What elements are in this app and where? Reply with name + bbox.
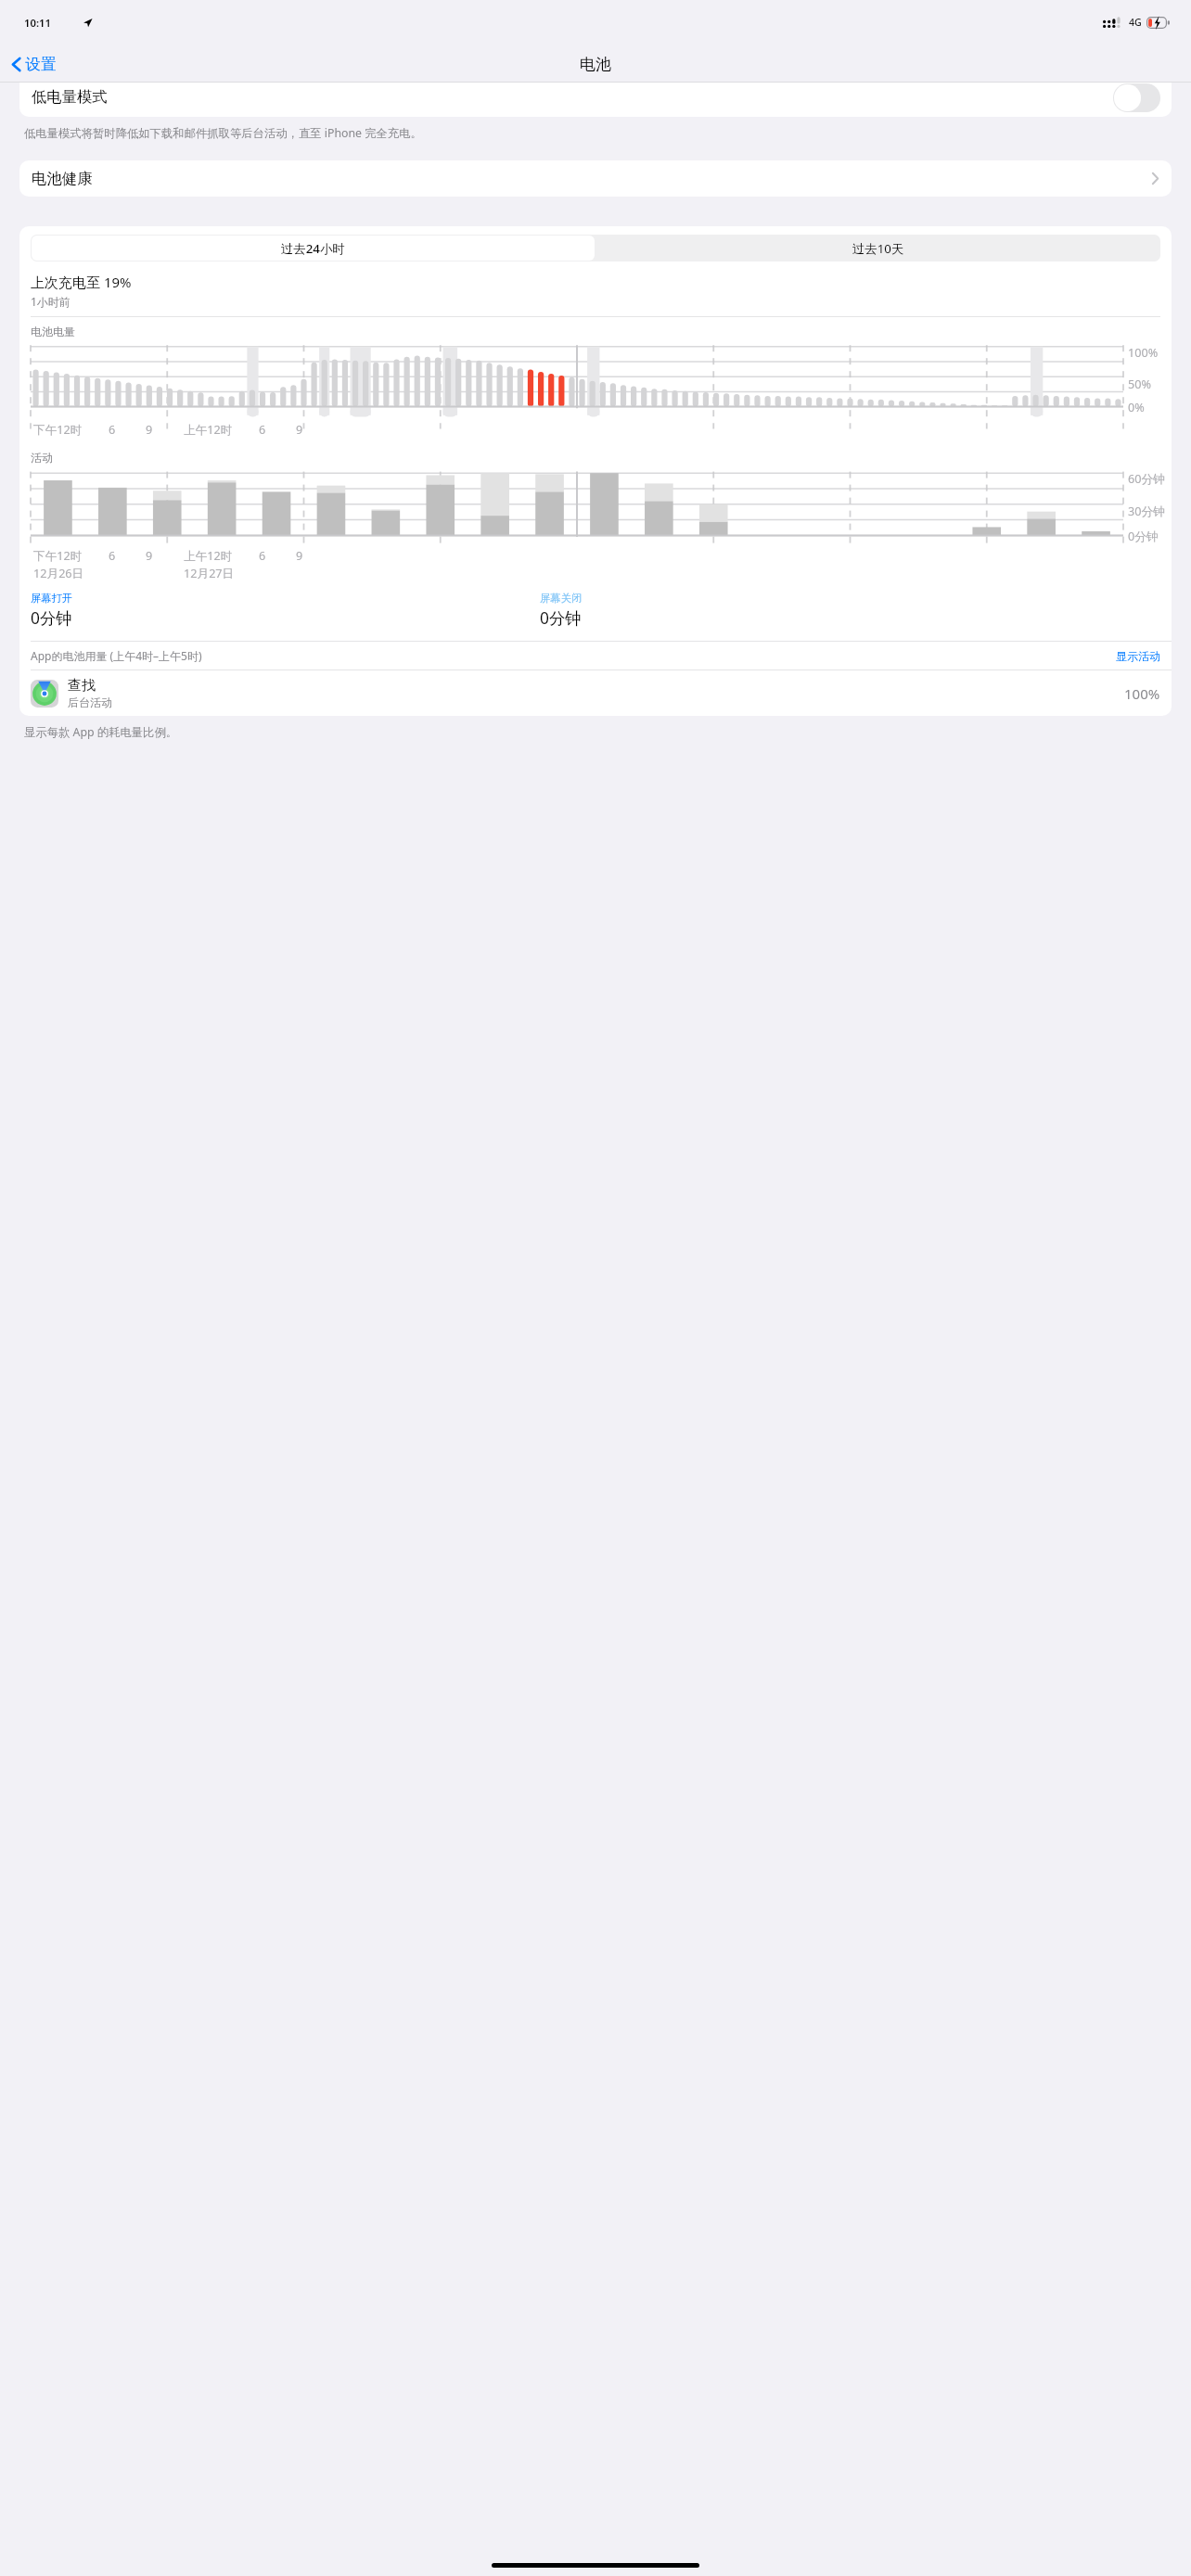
button[interactable]: 设置 bbox=[0, 51, 63, 78]
staticText: 设置 bbox=[25, 55, 57, 74]
staticText: 6 bbox=[109, 421, 116, 437]
staticText: 上次充电至 19% bbox=[31, 273, 132, 291]
staticText: 10:11 bbox=[24, 16, 52, 30]
staticText: 电池电量 bbox=[31, 325, 75, 338]
button[interactable]: 显示活动 bbox=[1116, 649, 1160, 663]
staticText: 过去24小时 bbox=[281, 240, 345, 257]
staticText: 60分钟 bbox=[1128, 470, 1165, 486]
staticText: 后台活动 bbox=[68, 695, 112, 709]
staticText: 100% bbox=[1128, 344, 1159, 360]
button[interactable]: 屏幕关闭 bbox=[540, 592, 1160, 629]
staticText: 过去10天 bbox=[852, 240, 904, 257]
staticText: 6 bbox=[109, 547, 116, 563]
staticText: 30分钟 bbox=[1128, 503, 1165, 518]
staticText: 9 bbox=[146, 547, 153, 563]
staticText: 4G bbox=[1129, 16, 1142, 30]
staticText: 12月27日 bbox=[184, 565, 235, 580]
staticText: 9 bbox=[296, 547, 303, 563]
staticText: 屏幕打开 bbox=[31, 592, 73, 605]
staticText: 上午12时 bbox=[184, 421, 233, 437]
staticText: 上午12时 bbox=[184, 547, 233, 563]
staticText: 1小时前 bbox=[31, 294, 70, 309]
staticText: 0分钟 bbox=[31, 606, 72, 629]
staticText: 100% bbox=[1124, 684, 1160, 703]
staticText: 0分钟 bbox=[1128, 528, 1159, 543]
staticText: 显示活动 bbox=[1116, 649, 1160, 663]
staticText: 下午12时 bbox=[33, 421, 83, 437]
staticText: 下午12时 bbox=[33, 547, 83, 563]
staticText: 电池 bbox=[580, 55, 611, 74]
button[interactable]: 低电量模式开关 bbox=[1113, 83, 1160, 112]
staticText: 活动 bbox=[31, 451, 53, 465]
button[interactable]: 低电量模式 bbox=[19, 83, 1172, 117]
button[interactable]: 电池健康 bbox=[19, 160, 1172, 197]
staticText: 低电量模式将暂时降低如下载和邮件抓取等后台活动，直至 iPhone 完全充电。 bbox=[24, 125, 422, 141]
staticText: 12月26日 bbox=[33, 565, 84, 580]
staticText: 0% bbox=[1128, 399, 1145, 414]
staticText: 低电量模式 bbox=[32, 87, 108, 107]
staticText: 6 bbox=[259, 421, 266, 437]
button[interactable]: 查找 bbox=[19, 670, 1172, 716]
staticText: 显示每款 App 的耗电量比例。 bbox=[24, 724, 178, 740]
staticText: 6 bbox=[259, 547, 266, 563]
staticText: 屏幕关闭 bbox=[540, 592, 583, 605]
staticText: 电池健康 bbox=[32, 169, 93, 188]
button[interactable]: 屏幕打开 bbox=[31, 592, 540, 629]
staticText: 0分钟 bbox=[540, 606, 582, 629]
staticText: App的电池用量 (上午4时–上午5时) bbox=[31, 648, 1116, 663]
staticText: 50% bbox=[1128, 376, 1151, 391]
button[interactable]: 过去10天 bbox=[595, 235, 1160, 261]
button[interactable]: 过去24小时 bbox=[32, 236, 595, 261]
staticText: 9 bbox=[146, 421, 153, 437]
staticText: 9 bbox=[296, 421, 303, 437]
staticText: 查找 bbox=[68, 677, 96, 695]
